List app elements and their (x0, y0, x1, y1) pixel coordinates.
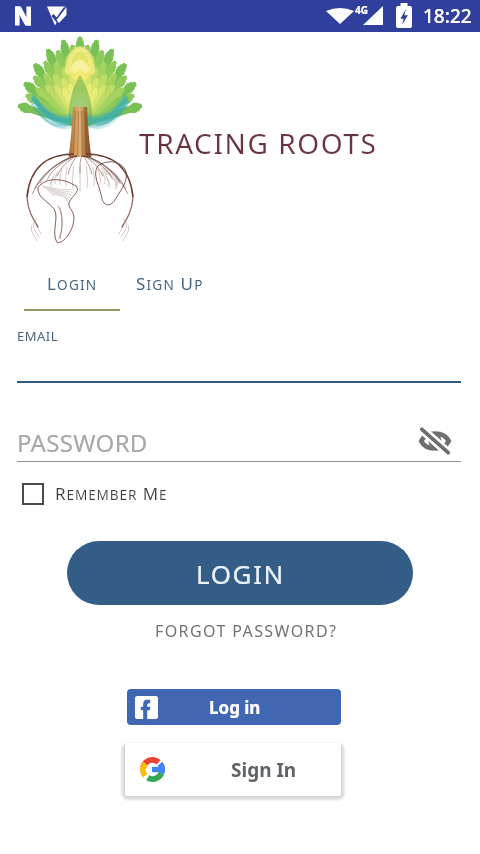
button[interactable]: LOGIN (47, 272, 98, 295)
staticText: 18:22 (423, 3, 472, 29)
button[interactable]: FORGOT PASSWORD? (155, 620, 338, 642)
staticText: FORGOT PASSWORD? (155, 620, 338, 642)
button[interactable]: SIGN UP (136, 272, 204, 295)
staticText: 4G (355, 3, 368, 17)
staticText: LOGIN (47, 272, 98, 295)
staticText: Sign In (231, 757, 297, 783)
button[interactable]: LOGIN (67, 541, 413, 605)
button[interactable]: REMEMBER ME (22, 482, 168, 505)
staticText: Log in (209, 696, 261, 719)
button[interactable]: Sign In (125, 743, 341, 796)
staticText: SIGN UP (136, 272, 204, 295)
staticText: TRACING ROOTS (139, 124, 378, 162)
button[interactable]: Show password (420, 426, 450, 456)
staticText: EMAIL (17, 327, 59, 345)
staticText: PASSWORD (17, 426, 148, 459)
staticText: LOGIN (196, 556, 285, 591)
staticText: REMEMBER ME (55, 482, 168, 505)
button[interactable]: Log in (127, 689, 341, 725)
